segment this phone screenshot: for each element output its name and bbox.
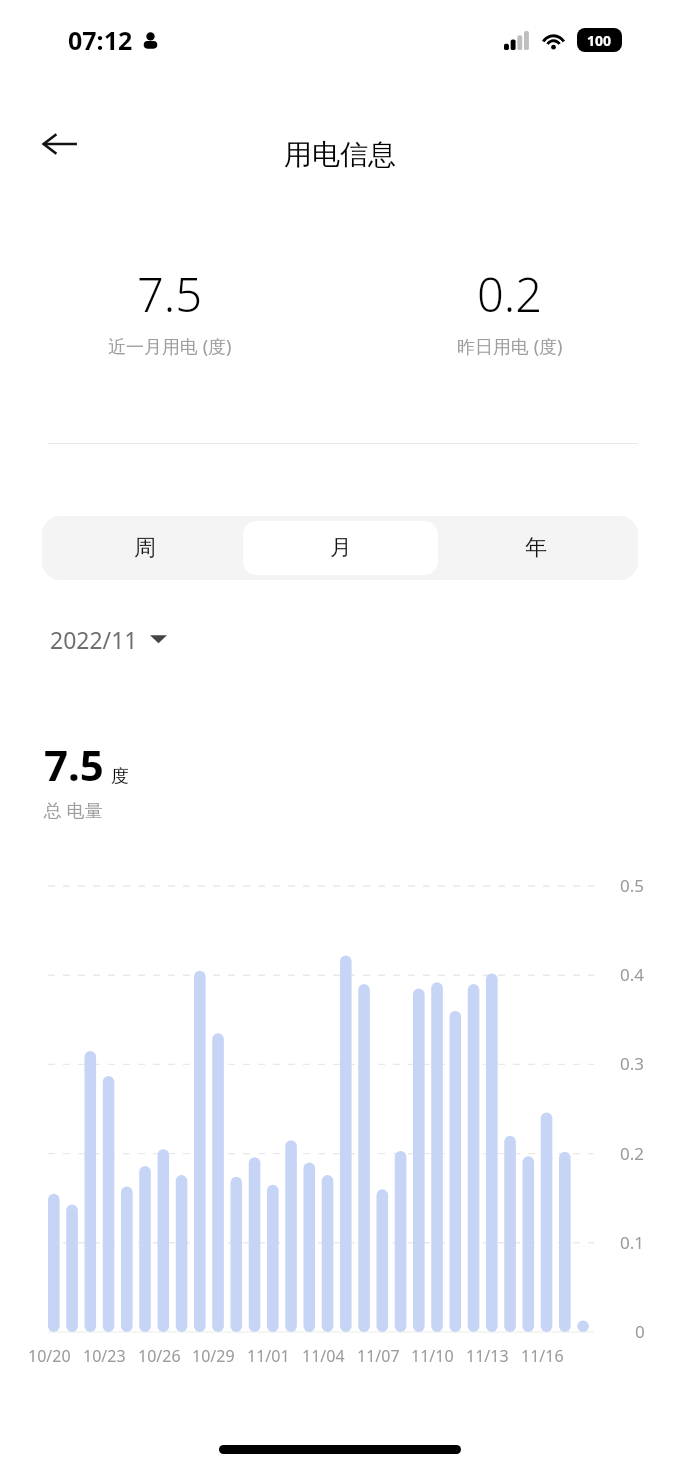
staticText: 11/10 bbox=[411, 1345, 454, 1367]
staticText: 10/29 bbox=[192, 1345, 235, 1367]
staticText: 昨日用电 (度) bbox=[457, 334, 563, 359]
staticText: 近一月用电 (度) bbox=[108, 334, 232, 359]
staticText: 11/07 bbox=[357, 1345, 400, 1367]
button[interactable]: 2022/11 bbox=[50, 618, 167, 660]
staticText: 度 bbox=[111, 765, 129, 788]
staticText: 10/23 bbox=[83, 1345, 126, 1367]
staticText: 0.2 bbox=[620, 1142, 645, 1165]
staticText: 月 bbox=[330, 534, 352, 562]
staticText: 0.2 bbox=[477, 262, 543, 326]
staticText: 0.3 bbox=[620, 1052, 645, 1075]
staticText: 10/20 bbox=[28, 1345, 71, 1367]
staticText: 7.5 bbox=[137, 262, 203, 326]
staticText: 11/04 bbox=[302, 1345, 345, 1367]
staticText: 0.1 bbox=[620, 1231, 645, 1254]
staticText: 11/16 bbox=[521, 1345, 564, 1367]
staticText: 2022/11 bbox=[50, 624, 138, 655]
staticText: 用电信息 bbox=[284, 137, 396, 172]
button[interactable]: 年 bbox=[438, 521, 633, 575]
button[interactable]: 周 bbox=[47, 521, 243, 575]
staticText: 0.5 bbox=[620, 874, 645, 897]
staticText: 100 bbox=[587, 31, 612, 50]
staticText: 0.4 bbox=[620, 963, 645, 986]
staticText: 周 bbox=[134, 534, 156, 562]
staticText: 年 bbox=[525, 534, 547, 562]
staticText: 总 电量 bbox=[44, 798, 103, 823]
staticText: 11/13 bbox=[466, 1345, 509, 1367]
staticText: 11/01 bbox=[247, 1345, 290, 1367]
staticText: 0 bbox=[635, 1320, 645, 1343]
button[interactable]: 月 bbox=[243, 521, 438, 575]
staticText: 10/26 bbox=[138, 1345, 181, 1367]
staticText: 07:12 bbox=[68, 23, 133, 57]
staticText: 7.5 bbox=[44, 736, 104, 793]
button[interactable]: Back bbox=[30, 114, 90, 174]
